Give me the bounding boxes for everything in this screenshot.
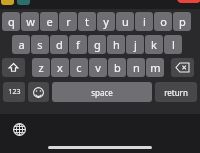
staticText: a: [18, 37, 25, 52]
button[interactable]: j: [126, 35, 144, 54]
staticText: f: [76, 37, 80, 52]
staticText: u: [122, 14, 129, 29]
button[interactable]: e: [40, 12, 58, 31]
button[interactable]: c: [70, 58, 88, 77]
staticText: return: [164, 87, 188, 98]
button[interactable]: m: [146, 58, 164, 77]
button[interactable]: i: [135, 12, 153, 31]
button[interactable]: t: [78, 12, 96, 31]
staticText: t: [85, 14, 89, 29]
button[interactable]: l: [164, 35, 182, 54]
staticText: q: [8, 14, 15, 29]
button[interactable]: 123: [3, 82, 25, 102]
button[interactable]: Switch keyboard language: [7, 117, 31, 141]
staticText: l: [172, 37, 175, 52]
button[interactable]: x: [51, 58, 69, 77]
button[interactable]: Backspace: [171, 58, 194, 77]
button[interactable]: s: [31, 35, 49, 54]
staticText: c: [76, 60, 82, 75]
button[interactable]: r: [59, 12, 77, 31]
staticText: o: [160, 14, 167, 29]
button[interactable]: b: [108, 58, 126, 77]
staticText: y: [103, 14, 109, 29]
button[interactable]: q: [2, 12, 20, 31]
staticText: space: [91, 87, 113, 98]
staticText: v: [95, 60, 101, 75]
button[interactable]: k: [145, 35, 163, 54]
button[interactable]: d: [50, 35, 68, 54]
staticText: g: [94, 37, 101, 52]
button[interactable]: h: [107, 35, 125, 54]
button[interactable]: n: [127, 58, 145, 77]
button[interactable]: f: [69, 35, 87, 54]
button[interactable]: o: [154, 12, 172, 31]
staticText: s: [37, 37, 43, 52]
staticText: z: [38, 60, 44, 75]
staticText: n: [133, 60, 140, 75]
staticText: i: [143, 14, 146, 29]
staticText: w: [26, 14, 35, 29]
button[interactable]: v: [89, 58, 107, 77]
button[interactable]: p: [173, 12, 191, 31]
staticText: b: [114, 60, 121, 75]
staticText: h: [113, 37, 120, 52]
staticText: k: [151, 37, 157, 52]
staticText: x: [57, 60, 63, 75]
staticText: j: [134, 37, 137, 52]
staticText: e: [46, 14, 53, 29]
button[interactable]: Shift: [2, 58, 25, 77]
staticText: 123: [8, 87, 21, 97]
button[interactable]: g: [88, 35, 106, 54]
button[interactable]: w: [21, 12, 39, 31]
button[interactable]: a: [12, 35, 30, 54]
button[interactable]: Emoji: [28, 82, 49, 102]
button[interactable]: return: [155, 82, 197, 102]
staticText: p: [179, 14, 186, 29]
button[interactable]: y: [97, 12, 115, 31]
staticText: d: [56, 37, 63, 52]
staticText: m: [150, 60, 161, 75]
staticText: r: [66, 14, 71, 29]
button[interactable]: space: [52, 82, 152, 102]
button[interactable]: u: [116, 12, 134, 31]
button[interactable]: z: [32, 58, 50, 77]
